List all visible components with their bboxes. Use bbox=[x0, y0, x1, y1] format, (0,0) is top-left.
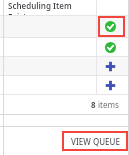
other: Status bbox=[105, 61, 116, 72]
other: Status bbox=[105, 21, 116, 32]
staticText: VIEW QUEUE bbox=[71, 136, 120, 147]
staticText: Scheduling Item Exists bbox=[8, 0, 96, 15]
button[interactable]: Status bbox=[0, 38, 129, 56]
button[interactable]: Status bbox=[0, 57, 129, 75]
button[interactable]: Status bbox=[0, 16, 129, 37]
button[interactable]: VIEW QUEUE bbox=[62, 131, 128, 151]
staticText: 8 bbox=[91, 99, 96, 110]
other: Status bbox=[105, 42, 116, 53]
button[interactable]: Status bbox=[0, 76, 129, 94]
staticText: items bbox=[98, 99, 119, 110]
other: Status bbox=[105, 80, 116, 91]
